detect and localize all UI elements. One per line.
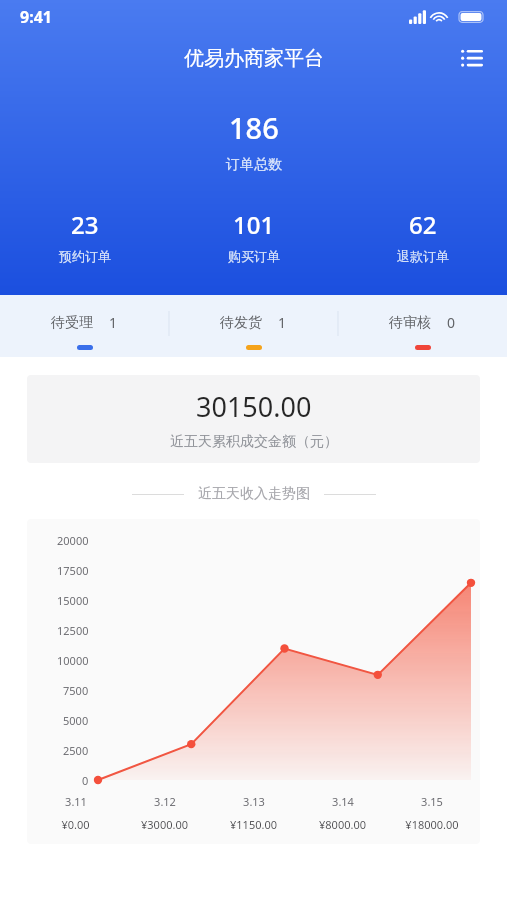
staticText: 3.14 [332, 794, 354, 809]
staticText: 预约订单 [59, 248, 111, 264]
staticText: 101 [233, 208, 275, 241]
staticText: 12500 [57, 623, 89, 638]
staticText: 近五天累积成交金额（元） [170, 433, 338, 451]
button[interactable]: 30150.00 [27, 375, 480, 463]
button[interactable]: 62 [338, 208, 507, 264]
button[interactable]: 101 [169, 208, 338, 264]
button[interactable]: 待受理 [0, 295, 169, 357]
staticText: ¥1150.00 [230, 817, 277, 832]
staticText: 0 [82, 773, 89, 788]
staticText: ¥0.00 [61, 817, 90, 832]
button[interactable]: 待发货 [169, 295, 338, 357]
staticText: 优易办商家平台 [184, 46, 324, 68]
button[interactable]: Menu [455, 42, 489, 76]
staticText: 7500 [63, 683, 89, 698]
staticText: 3.15 [421, 794, 443, 809]
staticText: 5000 [63, 713, 89, 728]
staticText: 待发货 [220, 314, 262, 332]
staticText: ¥3000.00 [141, 817, 188, 832]
staticText: 17500 [57, 563, 89, 578]
staticText: 20000 [57, 533, 89, 548]
staticText: 0 [447, 313, 456, 332]
staticText: 1 [109, 313, 118, 332]
staticText: 10000 [57, 653, 89, 668]
staticText: 购买订单 [228, 248, 280, 264]
staticText: 待审核 [389, 314, 431, 332]
staticText: ¥8000.00 [319, 817, 366, 832]
staticText: 3.13 [243, 794, 265, 809]
staticText: 2500 [63, 743, 89, 758]
staticText: 62 [409, 208, 437, 241]
staticText: 3.11 [65, 794, 87, 809]
staticText: 30150.00 [196, 388, 312, 425]
button[interactable]: 23 [0, 208, 169, 264]
staticText: 3.12 [154, 794, 176, 809]
staticText: 1 [278, 313, 287, 332]
staticText: 186 [229, 108, 279, 147]
staticText: 23 [71, 208, 99, 241]
staticText: ¥18000.00 [405, 817, 459, 832]
staticText: 订单总数 [226, 156, 282, 174]
staticText: 15000 [57, 593, 89, 608]
button[interactable]: 待审核 [338, 295, 507, 357]
staticText: 近五天收入走势图 [198, 485, 310, 503]
staticText: 退款订单 [397, 248, 449, 264]
staticText: 待受理 [51, 314, 93, 332]
staticText: 9:41 [20, 6, 52, 28]
